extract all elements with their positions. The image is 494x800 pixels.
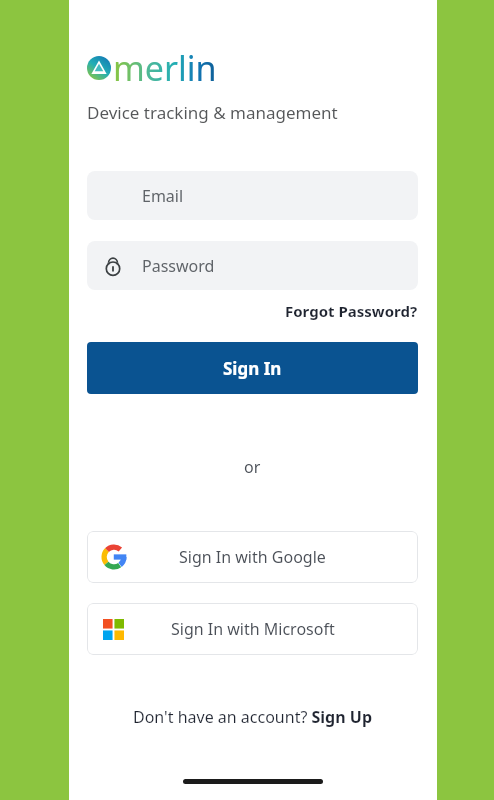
button[interactable]: Microsoft bbox=[87, 603, 418, 655]
staticText: Sign In with Microsoft bbox=[171, 618, 335, 640]
staticText: Forgot Password? bbox=[285, 301, 418, 321]
staticText: Sign In with Google bbox=[179, 546, 326, 568]
other: Microsoft bbox=[103, 619, 124, 640]
other: Google bbox=[103, 546, 125, 568]
other: Merlin logo bbox=[87, 56, 111, 80]
staticText: Sign In bbox=[223, 357, 282, 380]
staticText: Email bbox=[142, 185, 184, 207]
staticText: merlin bbox=[113, 45, 217, 91]
staticText: Device tracking & management bbox=[87, 101, 338, 124]
staticText: Password bbox=[142, 255, 215, 277]
staticText: Don't have an account? Sign Up bbox=[133, 706, 372, 728]
button[interactable]: Don't have an account? Sign Up bbox=[133, 706, 372, 728]
staticText: or bbox=[244, 456, 261, 478]
button[interactable]: Google bbox=[87, 531, 418, 583]
button[interactable]: Password bbox=[87, 241, 418, 290]
button[interactable]: Forgot Password? bbox=[285, 301, 418, 321]
button[interactable]: Sign In bbox=[87, 342, 418, 394]
button[interactable]: Email bbox=[87, 171, 418, 220]
